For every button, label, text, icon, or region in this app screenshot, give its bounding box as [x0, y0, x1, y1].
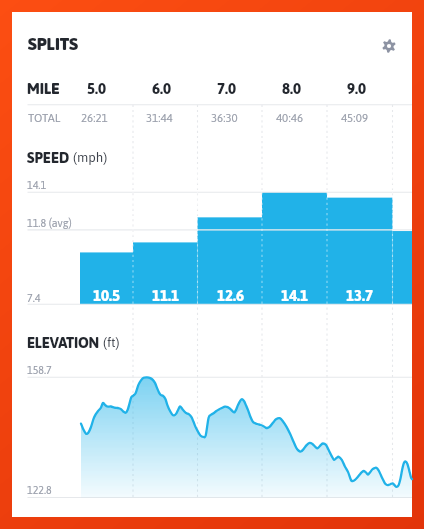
staticText: MILE [27, 80, 60, 97]
staticText: (ft) [103, 335, 120, 350]
staticText: TOTAL [28, 111, 61, 124]
staticText: 9.0 [347, 80, 367, 97]
staticText: 8.0 [282, 80, 302, 97]
staticText: 6.0 [152, 80, 172, 97]
staticText: SPEED [27, 149, 70, 166]
staticText: 11.1 [152, 287, 180, 304]
staticText: 12.6 [217, 287, 245, 304]
staticText: 14.1 [281, 287, 309, 304]
staticText: 26:21 [81, 111, 108, 124]
staticText: 36:30 [211, 111, 238, 124]
staticText: 7.0 [217, 80, 237, 97]
staticText: 31:44 [146, 111, 173, 124]
staticText: ELEVATION [27, 334, 99, 351]
staticText: 7.4 [27, 292, 41, 304]
staticText: 45:09 [341, 111, 368, 124]
staticText: 14.1 [27, 179, 47, 191]
staticText: 158.7 [27, 364, 52, 376]
button[interactable]: Settings [377, 34, 401, 58]
staticText: 13.7 [346, 287, 374, 304]
staticText: 11.8 (avg) [27, 217, 72, 229]
staticText: 10.5 [93, 287, 121, 304]
staticText: 5.0 [87, 80, 107, 97]
staticText: SPLITS [28, 34, 78, 54]
staticText: 40:46 [276, 111, 303, 124]
staticText: 122.8 [27, 484, 52, 496]
staticText: (mph) [73, 150, 108, 165]
